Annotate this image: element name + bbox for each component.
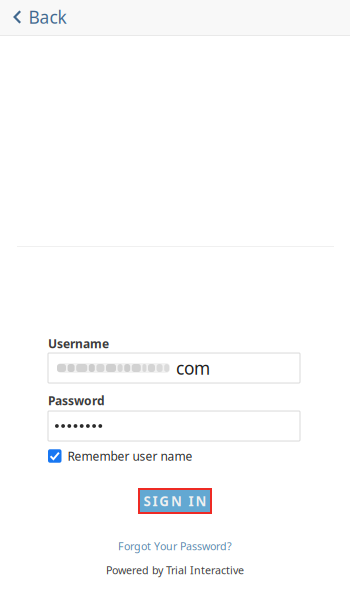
staticText: Remember user name (67, 448, 192, 464)
staticText: SIGN IN (144, 492, 206, 510)
staticText: Username (48, 335, 109, 351)
button[interactable]: Forgot Your Password? (95, 538, 255, 554)
staticText: com (176, 356, 210, 379)
button[interactable]: Back (0, 0, 80, 34)
button[interactable]: Remember user name (48, 448, 300, 464)
staticText: Forgot Your Password? (118, 539, 232, 553)
staticText: Back (28, 5, 66, 28)
staticText: Password (48, 392, 105, 408)
button[interactable]: SIGN IN (138, 488, 212, 514)
staticText: Powered by Trial Interactive (106, 563, 244, 577)
